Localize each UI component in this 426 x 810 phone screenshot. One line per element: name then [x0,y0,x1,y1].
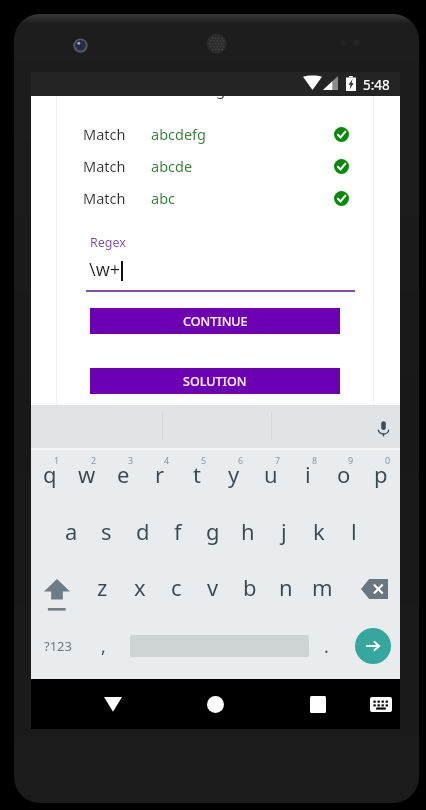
staticText: abcdefg [151,124,207,144]
button[interactable]: Match [31,187,400,212]
staticText: abc [151,188,176,208]
button[interactable]: a [54,503,89,559]
button[interactable]: 7 [252,450,289,506]
button[interactable]: Match [31,123,400,148]
button[interactable]: m [304,559,341,615]
staticText: 5 [201,454,207,466]
button[interactable]: 9 [325,450,362,506]
button[interactable]: Home [195,679,235,729]
button[interactable]: 5 [178,450,215,506]
button[interactable]: Shift [38,564,74,620]
staticText: m [312,572,333,602]
staticText: 8 [312,454,318,466]
button[interactable]: 6 [215,450,252,506]
staticText: \w+ [89,257,121,282]
staticText: x [134,572,146,602]
staticText: CONTINUE [183,313,248,330]
button[interactable]: Backspace [356,564,392,620]
staticText: 1 [54,454,60,466]
button[interactable]: Switch keyboard [361,679,398,729]
button[interactable]: d [125,503,160,559]
staticText: 5:48 [363,76,390,94]
button[interactable]: f [160,503,195,559]
button[interactable]: ?123 [40,618,76,674]
button[interactable]: 4 [141,450,178,506]
staticText: c [171,572,182,602]
button[interactable]: v [194,559,231,615]
button[interactable]: . [312,618,340,674]
staticText: j [281,516,287,546]
staticText: h [241,516,255,546]
button[interactable]: , [89,618,117,674]
button[interactable]: j [266,503,301,559]
staticText: i [305,459,311,489]
staticText: o [337,459,351,489]
staticText: e [117,459,130,489]
button[interactable]: 8 [289,450,326,506]
staticText: Matching [159,96,226,99]
button[interactable]: Match [31,155,400,180]
staticText: 0 [385,454,391,466]
button[interactable]: c [158,559,195,615]
staticText: s [101,516,112,546]
staticText: abcde [151,156,193,176]
staticText: b [243,572,257,602]
staticText: . [324,634,329,659]
staticText: r [155,459,165,489]
button[interactable]: k [301,503,336,559]
staticText: n [279,572,293,602]
staticText: g [206,516,220,546]
staticText: t [193,459,201,489]
staticText: 7 [275,454,281,466]
staticText: p [374,459,388,489]
staticText: y [228,459,240,489]
staticText: u [264,459,278,489]
staticText: f [174,516,182,546]
button[interactable]: Recents [298,679,338,729]
button[interactable]: 3 [105,450,142,506]
staticText: Regex [90,234,126,251]
button[interactable]: SOLUTION [90,368,340,394]
button[interactable]: b [231,559,268,615]
staticText: k [313,516,325,546]
staticText: 2 [91,454,97,466]
staticText: 3 [128,454,134,466]
staticText: , [101,634,106,659]
staticText: z [97,572,108,602]
staticText: d [136,516,150,546]
other: Voice input [374,419,393,438]
staticText: Match [83,124,126,144]
button[interactable]: z [84,559,121,615]
button[interactable]: Back [93,679,133,729]
button[interactable]: l [336,503,371,559]
staticText: 6 [238,454,244,466]
staticText: v [207,572,219,602]
staticText: a [65,516,78,546]
button[interactable]: x [121,559,158,615]
button[interactable] [121,618,311,674]
button[interactable]: n [267,559,304,615]
button[interactable]: s [89,503,124,559]
staticText: 9 [348,454,354,466]
staticText: Match [83,156,126,176]
staticText: Match [83,188,126,208]
button[interactable]: g [195,503,230,559]
button[interactable]: CONTINUE [90,308,340,334]
button[interactable]: Enter [349,618,394,674]
button[interactable]: 2 [68,450,105,506]
staticText: q [43,459,57,489]
button[interactable]: h [230,503,265,559]
button[interactable]: 1 [31,450,68,506]
staticText: 4 [164,454,170,466]
button[interactable]: 0 [362,450,399,506]
staticText: l [351,516,357,546]
staticText: w [78,459,96,489]
staticText: SOLUTION [183,373,247,390]
staticText: ?123 [44,637,72,655]
